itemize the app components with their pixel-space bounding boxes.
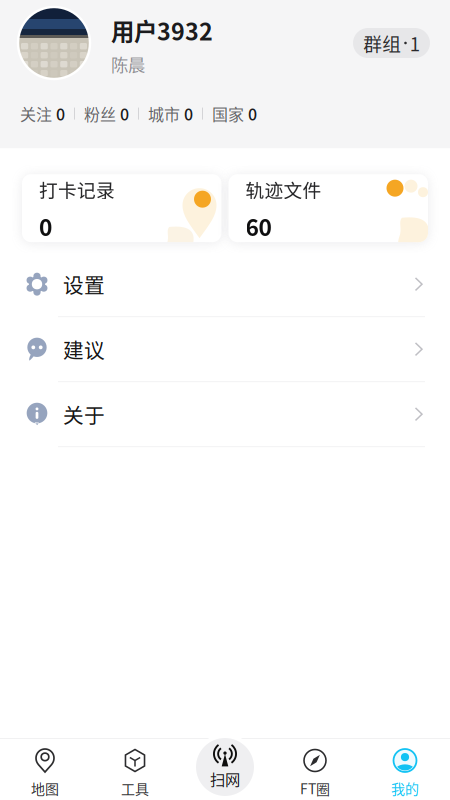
staticText: 工具 — [121, 778, 149, 798]
button[interactable]: 我的 — [360, 738, 450, 800]
button[interactable]: 扫网 — [192, 734, 258, 800]
staticText: 打卡记录 — [39, 176, 115, 203]
staticText: 建议 — [63, 334, 105, 364]
staticText: 1 — [410, 29, 420, 56]
staticText: 城市 — [148, 102, 180, 125]
staticText: 0 — [39, 210, 52, 243]
staticText: 0 — [120, 102, 129, 125]
staticText: 关于 — [63, 399, 105, 429]
staticText: 陈晨 — [111, 51, 145, 76]
button[interactable]: FT圈 — [270, 738, 360, 800]
button[interactable]: 地图 — [0, 738, 90, 800]
staticText: 用户3932 — [111, 14, 213, 47]
button[interactable]: 打卡记录 — [22, 174, 221, 242]
staticText: 0 — [248, 102, 257, 125]
button[interactable]: 轨迹文件 — [228, 174, 428, 242]
staticText: 我的 — [391, 778, 419, 798]
staticText: 国家 — [212, 102, 244, 125]
staticText: 设置 — [63, 269, 105, 299]
button[interactable]: 群组 — [353, 28, 430, 58]
staticText: 轨迹文件 — [245, 176, 321, 203]
staticText: 0 — [184, 102, 193, 125]
staticText: 扫网 — [210, 767, 240, 790]
button[interactable]: 关于 — [0, 382, 450, 447]
staticText: 60 — [245, 210, 271, 243]
staticText: FT圈 — [300, 778, 330, 798]
staticText: 地图 — [31, 778, 59, 798]
staticText: 群组 — [363, 29, 401, 56]
staticText: 粉丝 — [84, 102, 116, 125]
button[interactable]: 工具 — [90, 738, 180, 800]
button[interactable]: 建议 — [0, 317, 450, 382]
button[interactable]: 设置 — [0, 252, 450, 317]
staticText: 0 — [56, 102, 65, 125]
staticText: 关注 — [20, 102, 52, 125]
